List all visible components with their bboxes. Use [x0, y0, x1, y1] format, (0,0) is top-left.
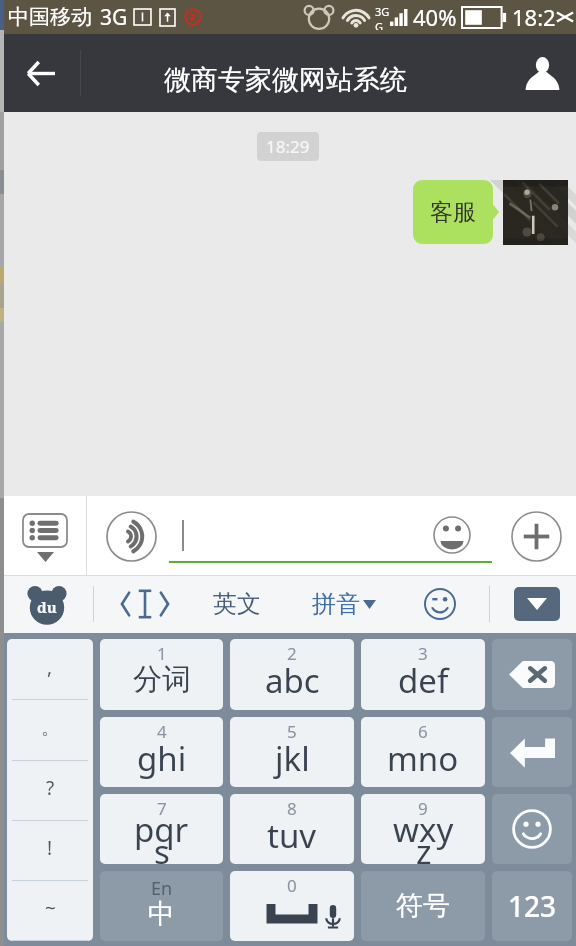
- button[interactable]: Baidu input settings: [0, 575, 93, 633]
- button[interactable]: 拼音: [300, 575, 400, 633]
- staticText: 英文: [213, 589, 261, 619]
- button[interactable]: 123: [492, 871, 572, 941]
- staticText: ,: [47, 654, 53, 680]
- staticText: 中: [148, 897, 175, 931]
- button[interactable]: Hide keyboard: [498, 575, 576, 633]
- staticText: 。: [41, 716, 60, 740]
- staticText: abc: [265, 658, 320, 703]
- staticText: ghi: [137, 736, 187, 781]
- staticText: 分词: [133, 661, 191, 698]
- staticText: 6: [418, 720, 428, 743]
- staticText: 0: [287, 874, 297, 897]
- button[interactable]: 5: [230, 717, 354, 787]
- staticText: s: [154, 829, 170, 864]
- staticText: wxy: [393, 807, 454, 852]
- button[interactable]: Enter: [492, 717, 572, 787]
- button[interactable]: 6: [361, 717, 485, 787]
- staticText: 中国移动: [8, 4, 92, 30]
- button[interactable]: 符号: [361, 871, 485, 941]
- button[interactable]: 客服: [413, 180, 493, 244]
- button[interactable]: 9: [361, 794, 485, 864]
- staticText: tuv: [267, 813, 317, 858]
- button[interactable]: En: [100, 871, 223, 941]
- staticText: ~: [45, 895, 56, 921]
- staticText: du: [37, 597, 57, 617]
- staticText: 9: [418, 797, 428, 820]
- button[interactable]: Quick replies: [0, 496, 86, 575]
- staticText: 3G: [100, 3, 128, 32]
- staticText: z: [416, 829, 432, 864]
- staticText: pqr: [134, 807, 189, 852]
- staticText: 客服: [430, 198, 476, 227]
- staticText: 5: [287, 720, 297, 743]
- staticText: 7: [157, 797, 167, 820]
- staticText: jkl: [275, 736, 310, 781]
- button[interactable]: Profile: [510, 34, 576, 112]
- button[interactable]: Space: [230, 871, 354, 941]
- staticText: 40%: [413, 2, 457, 32]
- button[interactable]: Punctuation: [7, 639, 93, 941]
- staticText: 4: [157, 720, 167, 743]
- button[interactable]: 2: [230, 639, 354, 710]
- staticText: 符号: [396, 889, 450, 923]
- button[interactable]: 1: [100, 639, 223, 710]
- button[interactable]: Voice input: [106, 511, 157, 562]
- staticText: 18:2: [512, 2, 556, 32]
- button[interactable]: More options: [511, 511, 562, 562]
- button[interactable]: Backspace: [492, 639, 572, 710]
- button[interactable]: 英文: [192, 575, 282, 633]
- staticText: def: [398, 658, 449, 703]
- staticText: ?: [46, 775, 55, 801]
- staticText: 3: [418, 642, 428, 665]
- button[interactable]: Back: [0, 34, 80, 112]
- button[interactable]: 4: [100, 717, 223, 787]
- button[interactable]: 7: [100, 794, 223, 864]
- button[interactable]: Cursor controls: [105, 575, 185, 633]
- staticText: 2: [287, 642, 297, 665]
- staticText: 8: [287, 797, 297, 820]
- button[interactable]: 3: [361, 639, 485, 710]
- staticText: mno: [387, 736, 459, 781]
- staticText: 1: [157, 642, 167, 665]
- button[interactable]: Emoji: [492, 794, 572, 864]
- staticText: G: [375, 19, 384, 30]
- staticText: En: [151, 876, 173, 901]
- staticText: !: [47, 835, 53, 861]
- staticText: 微商专家微网站系统: [164, 63, 407, 97]
- button[interactable]: Emoji keyboard: [405, 575, 475, 633]
- staticText: 3G: [375, 4, 390, 19]
- staticText: 123: [508, 887, 557, 925]
- staticText: 拼音: [312, 589, 360, 619]
- button[interactable]: 8: [230, 794, 354, 864]
- button[interactable]: Emoji: [433, 516, 471, 554]
- staticText: 18:29: [266, 135, 310, 158]
